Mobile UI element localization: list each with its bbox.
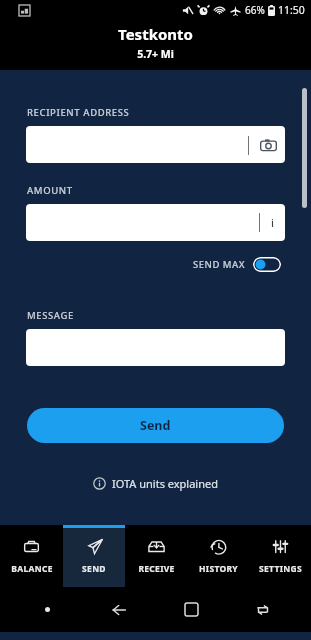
staticText: HISTORY — [199, 563, 238, 575]
staticText: i — [271, 215, 274, 230]
button[interactable]: BALANCE — [0, 525, 63, 587]
button[interactable]: Send — [27, 408, 284, 443]
staticText: SETTINGS — [259, 563, 302, 575]
staticText: 66% — [245, 3, 265, 17]
button[interactable]: SETTINGS — [249, 525, 311, 587]
button[interactable]: Home — [155, 603, 227, 616]
button[interactable]: IOTA units explained — [89, 472, 222, 495]
staticText: 5.7+ Mi — [137, 47, 174, 61]
button[interactable]: SEND MAX — [189, 253, 285, 276]
staticText: AMOUNT — [27, 184, 73, 197]
staticText: RECIPIENT ADDRESS — [27, 106, 130, 119]
staticText: SEND MAX — [193, 258, 246, 271]
staticText: RECEIVE — [138, 563, 175, 575]
staticText: MESSAGE — [27, 309, 74, 322]
button[interactable] — [26, 329, 285, 366]
staticText: 11:50 — [278, 3, 305, 17]
button[interactable]: Scan QR code — [26, 126, 285, 163]
button[interactable]: RECEIVE — [125, 525, 187, 587]
button[interactable]: SEND — [63, 525, 125, 587]
button[interactable]: i — [26, 204, 285, 241]
staticText: Send — [140, 417, 171, 434]
button[interactable]: Recents — [227, 603, 299, 617]
staticText: Testkonto — [118, 24, 193, 44]
staticText: SEND — [82, 563, 106, 575]
staticText: IOTA units explained — [112, 476, 218, 491]
button[interactable]: Scan QR code — [258, 135, 278, 155]
button[interactable]: HISTORY — [187, 525, 249, 587]
staticText: BALANCE — [11, 563, 53, 575]
button[interactable]: Back — [83, 602, 155, 618]
